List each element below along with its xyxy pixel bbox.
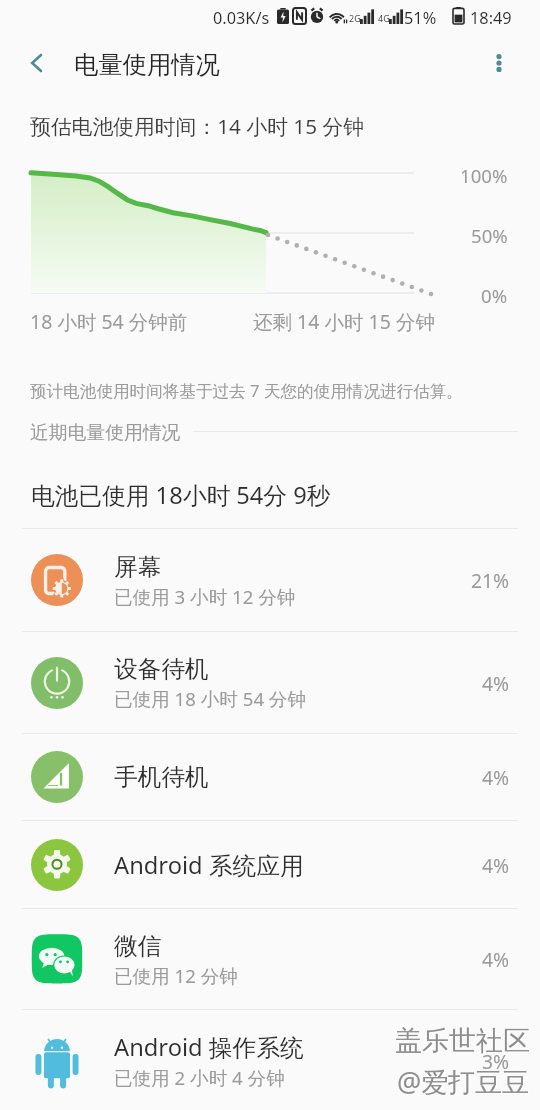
staticText: 电池已使用 18小时 54分 9秒 (31, 479, 331, 511)
staticText: 盖乐世社区 (395, 1024, 530, 1058)
staticText: 51% (404, 7, 437, 29)
staticText: Android 系统应用 (114, 849, 304, 881)
staticText: 已使用 2 小时 4 分钟 (114, 1065, 285, 1090)
staticText: 50% (471, 223, 508, 248)
button[interactable]: Android 系统应用 (0, 821, 540, 908)
staticText: 0% (481, 283, 508, 308)
staticText: 盖乐世社区 (396, 1025, 531, 1059)
button[interactable]: 手机待机 (0, 734, 540, 820)
button[interactable]: 设备待机 (0, 632, 540, 733)
staticText: 屏幕 (114, 552, 162, 582)
staticText: 还剩 14 小时 15 分钟 (253, 308, 435, 335)
staticText: 3% (482, 1048, 510, 1074)
staticText: 微信 (114, 931, 162, 961)
staticText: 预估电池使用时间：14 小时 15 分钟 (30, 112, 365, 140)
button[interactable]: More options (473, 37, 525, 89)
button[interactable]: Back (11, 37, 63, 89)
staticText: 21% (471, 567, 510, 593)
staticText: 4% (482, 946, 510, 972)
button[interactable]: 微信 (0, 909, 540, 1009)
staticText: 已使用 3 小时 12 分钟 (114, 584, 296, 609)
staticText: 设备待机 (114, 654, 209, 684)
staticText: 预计电池使用时间将基于过去 7 天您的使用情况进行估算。 (30, 379, 463, 402)
staticText: Android 操作系统 (114, 1031, 304, 1063)
staticText: 18:49 (470, 7, 512, 29)
staticText: 4% (482, 764, 510, 790)
staticText: 近期电量使用情况 (30, 421, 181, 445)
staticText: 100% (460, 163, 508, 188)
staticText: 4G (378, 12, 390, 24)
button[interactable]: Android 操作系统 (0, 1010, 540, 1110)
staticText: 4% (482, 670, 510, 696)
staticText: 4% (482, 852, 510, 878)
staticText: 手机待机 (114, 762, 209, 792)
staticText: 2G (349, 12, 361, 24)
staticText: 已使用 18 小时 54 分钟 (114, 686, 307, 711)
staticText: @爱打豆豆 (397, 1063, 530, 1100)
staticText: 已使用 12 分钟 (114, 963, 238, 988)
staticText: 0.03K/s (213, 7, 270, 29)
staticText: @爱打豆豆 (398, 1064, 531, 1101)
staticText: 电量使用情况 (74, 50, 220, 81)
button[interactable]: 屏幕 (0, 529, 540, 631)
staticText: 18 小时 54 分钟前 (30, 308, 188, 335)
